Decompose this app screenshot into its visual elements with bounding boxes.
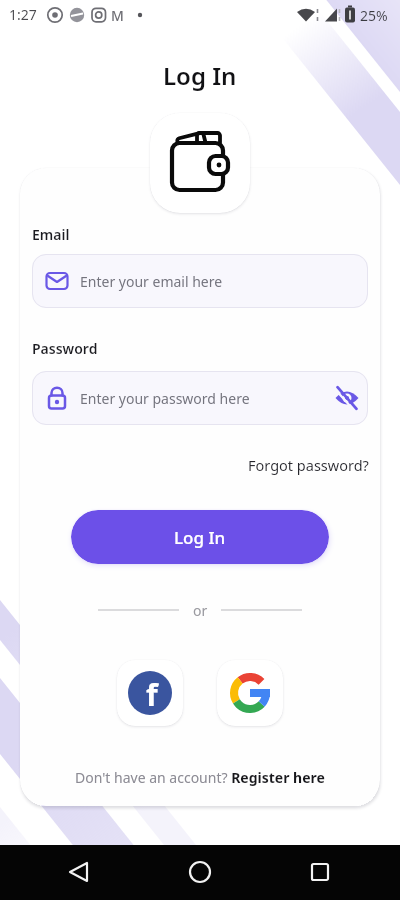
button[interactable] xyxy=(54,848,102,896)
staticText: M xyxy=(111,6,124,25)
button[interactable]: Enter your password here xyxy=(32,371,368,425)
staticText: Log In xyxy=(163,59,237,92)
button[interactable] xyxy=(217,660,283,726)
staticText: Enter your email here xyxy=(80,272,223,291)
staticText: f xyxy=(146,674,158,715)
staticText: 25% xyxy=(360,6,388,25)
staticText: Email xyxy=(32,225,70,244)
button[interactable]: Log In xyxy=(71,510,329,564)
staticText: Enter your password here xyxy=(80,389,250,408)
staticText: Password xyxy=(32,339,98,358)
button[interactable] xyxy=(176,848,224,896)
button[interactable]: Enter your email here xyxy=(32,254,368,308)
button[interactable]: Don't have an account? Register here xyxy=(0,768,400,787)
button[interactable]: f xyxy=(117,660,183,726)
staticText: Forgot password? xyxy=(248,455,369,475)
staticText: Don't have an account? Register here xyxy=(75,768,325,787)
staticText: 1:27 xyxy=(9,5,37,24)
button[interactable]: Forgot password? xyxy=(0,455,369,475)
staticText: or xyxy=(193,601,208,620)
button[interactable] xyxy=(326,377,368,419)
staticText: Log In xyxy=(174,526,226,549)
button[interactable] xyxy=(296,848,344,896)
